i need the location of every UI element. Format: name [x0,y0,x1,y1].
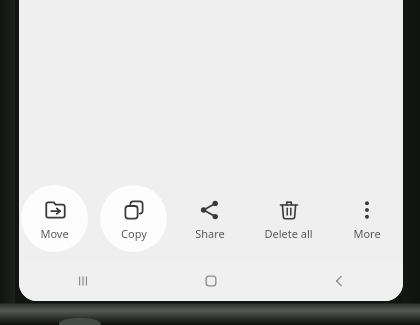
staticText: Delete all [264,226,313,241]
button[interactable]: Delete all [246,185,330,252]
staticText: Move [40,226,69,241]
button[interactable]: Copy [100,185,167,252]
staticText: More [353,226,381,241]
staticText: Copy [121,226,147,241]
button[interactable]: Recents [19,261,147,301]
button[interactable]: Move [21,185,88,252]
button[interactable]: More [330,185,403,252]
button[interactable]: Back [275,261,403,301]
button[interactable]: Share [173,185,246,252]
staticText: Share [195,226,225,241]
button[interactable]: Home [147,261,275,301]
